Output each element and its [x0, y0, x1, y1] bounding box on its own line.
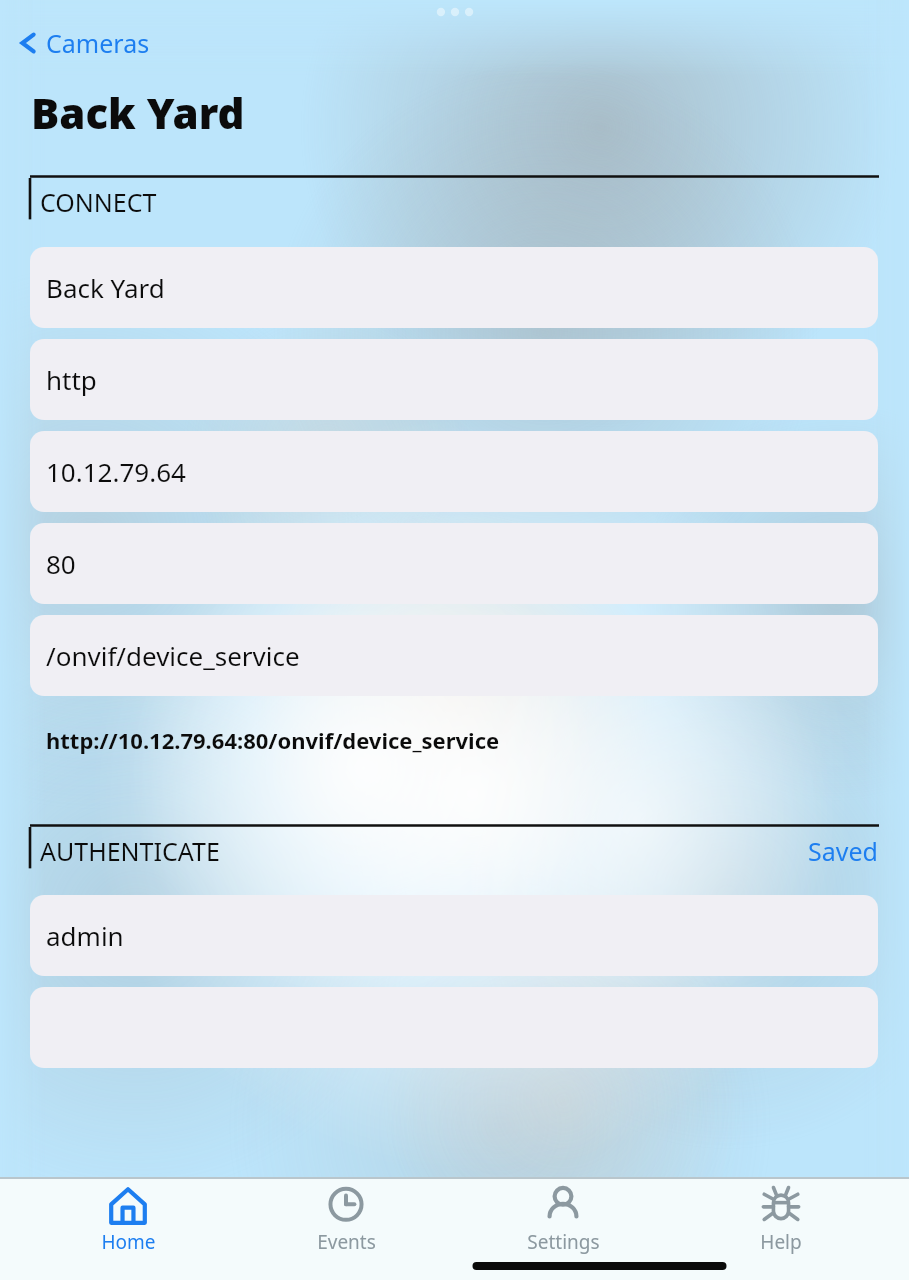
button[interactable]: 80 [30, 523, 878, 604]
staticText: 10.12.79.64 [46, 454, 186, 489]
button[interactable]: Settings [473, 1179, 653, 1255]
staticText: Help [760, 1229, 802, 1255]
staticText: /onvif/device_service [46, 638, 300, 673]
button[interactable]: 10.12.79.64 [30, 431, 878, 512]
button[interactable]: Cameras [14, 24, 154, 62]
staticText: http://10.12.79.64:80/onvif/device_servi… [46, 725, 500, 755]
button[interactable]: admin [30, 895, 878, 976]
staticText: admin [46, 918, 124, 953]
staticText: CONNECT [40, 185, 157, 219]
button[interactable]: Back Yard [30, 247, 878, 328]
staticText: http [46, 362, 97, 397]
staticText: Back Yard [46, 270, 165, 305]
button[interactable]: Help [691, 1179, 871, 1255]
button[interactable]: Home [38, 1179, 218, 1255]
staticText: Cameras [46, 26, 150, 60]
staticText: Back Yard [31, 84, 245, 141]
staticText: Events [317, 1229, 376, 1255]
button[interactable]: /onvif/device_service [30, 615, 878, 696]
staticText: Settings [527, 1229, 600, 1255]
staticText: 80 [46, 546, 76, 581]
staticText: Home [101, 1229, 156, 1255]
button[interactable]: Events [256, 1179, 436, 1255]
button[interactable]: Saved [798, 834, 909, 868]
staticText: AUTHENTICATE [40, 834, 220, 868]
button[interactable]: http [30, 339, 878, 420]
